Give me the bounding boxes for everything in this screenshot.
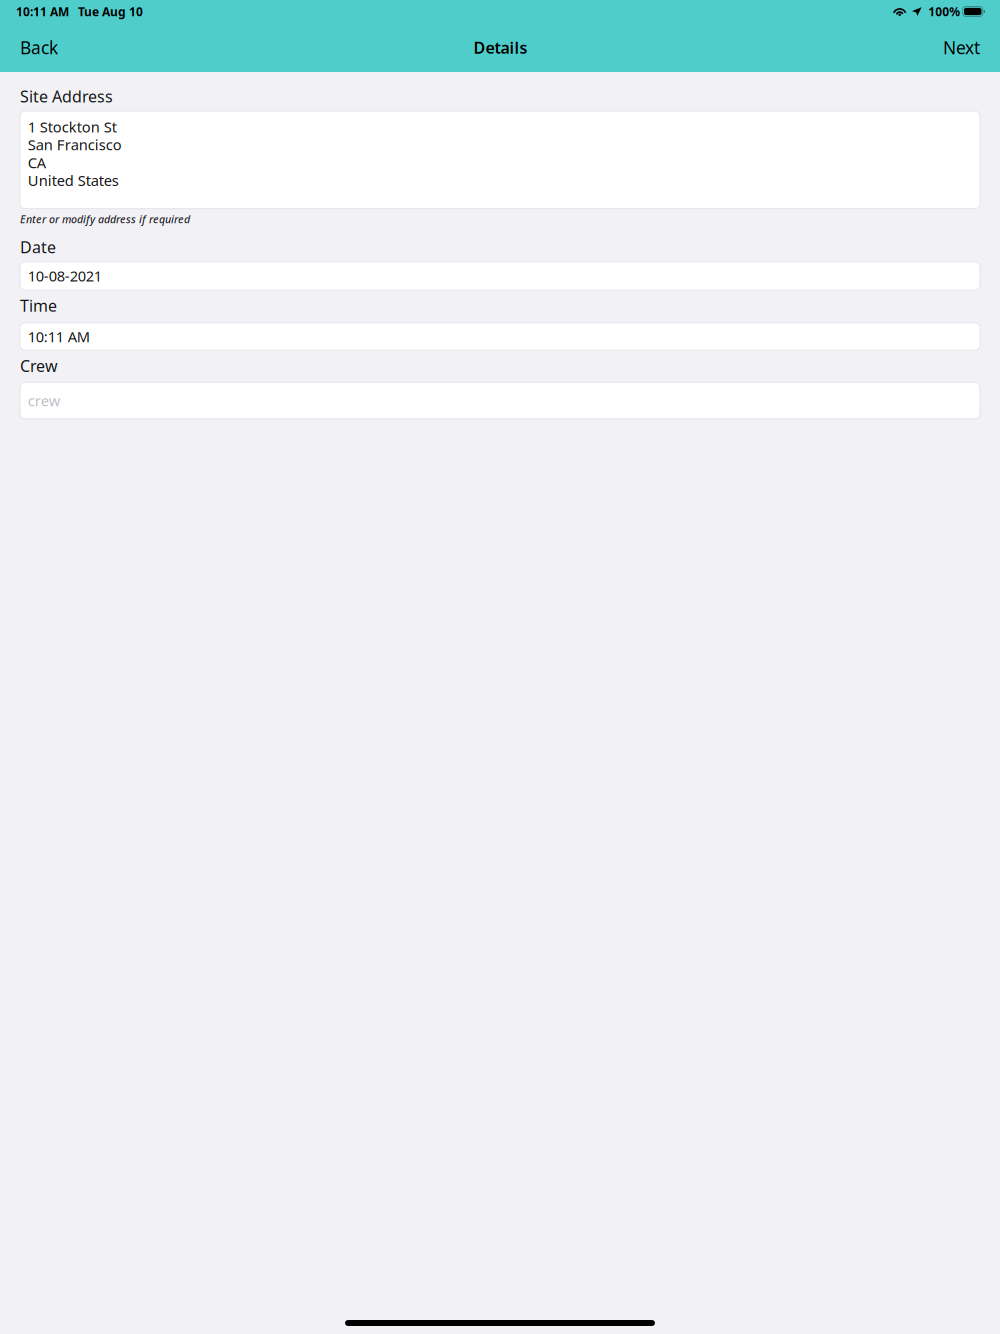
staticText: 10:11 AM	[16, 3, 69, 19]
staticText: Site Address	[20, 86, 113, 107]
staticText: crew	[28, 391, 61, 410]
staticText: Details	[473, 37, 527, 58]
staticText: Enter or modify address if required	[20, 212, 190, 226]
staticText: Time	[20, 295, 57, 316]
staticText: CA	[28, 153, 46, 172]
staticText: Next	[943, 36, 980, 59]
staticText: Tue Aug 10	[78, 3, 143, 19]
staticText: United States	[28, 171, 119, 190]
staticText: San Francisco	[28, 135, 122, 154]
staticText: 100%	[928, 3, 960, 19]
staticText: 10:11 AM	[28, 327, 90, 346]
button[interactable]: crew	[20, 382, 980, 419]
button[interactable]: Back	[15, 28, 63, 67]
button[interactable]: 10:11 AM	[20, 323, 980, 350]
staticText: Crew	[20, 355, 58, 376]
button[interactable]: 10-08-2021	[20, 262, 980, 290]
staticText: Date	[20, 236, 56, 258]
staticText: Back	[20, 36, 58, 59]
button[interactable]: 1 Stockton St	[20, 111, 980, 209]
staticText: 10-08-2021	[28, 266, 102, 286]
button[interactable]: Next	[938, 28, 985, 67]
staticText: 1 Stockton St	[28, 117, 117, 136]
